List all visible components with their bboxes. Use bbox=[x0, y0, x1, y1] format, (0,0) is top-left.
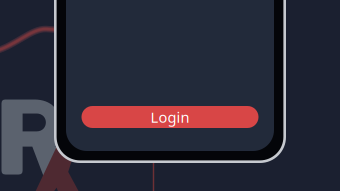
staticText: Login bbox=[150, 107, 189, 127]
button[interactable]: Login bbox=[81, 106, 258, 128]
